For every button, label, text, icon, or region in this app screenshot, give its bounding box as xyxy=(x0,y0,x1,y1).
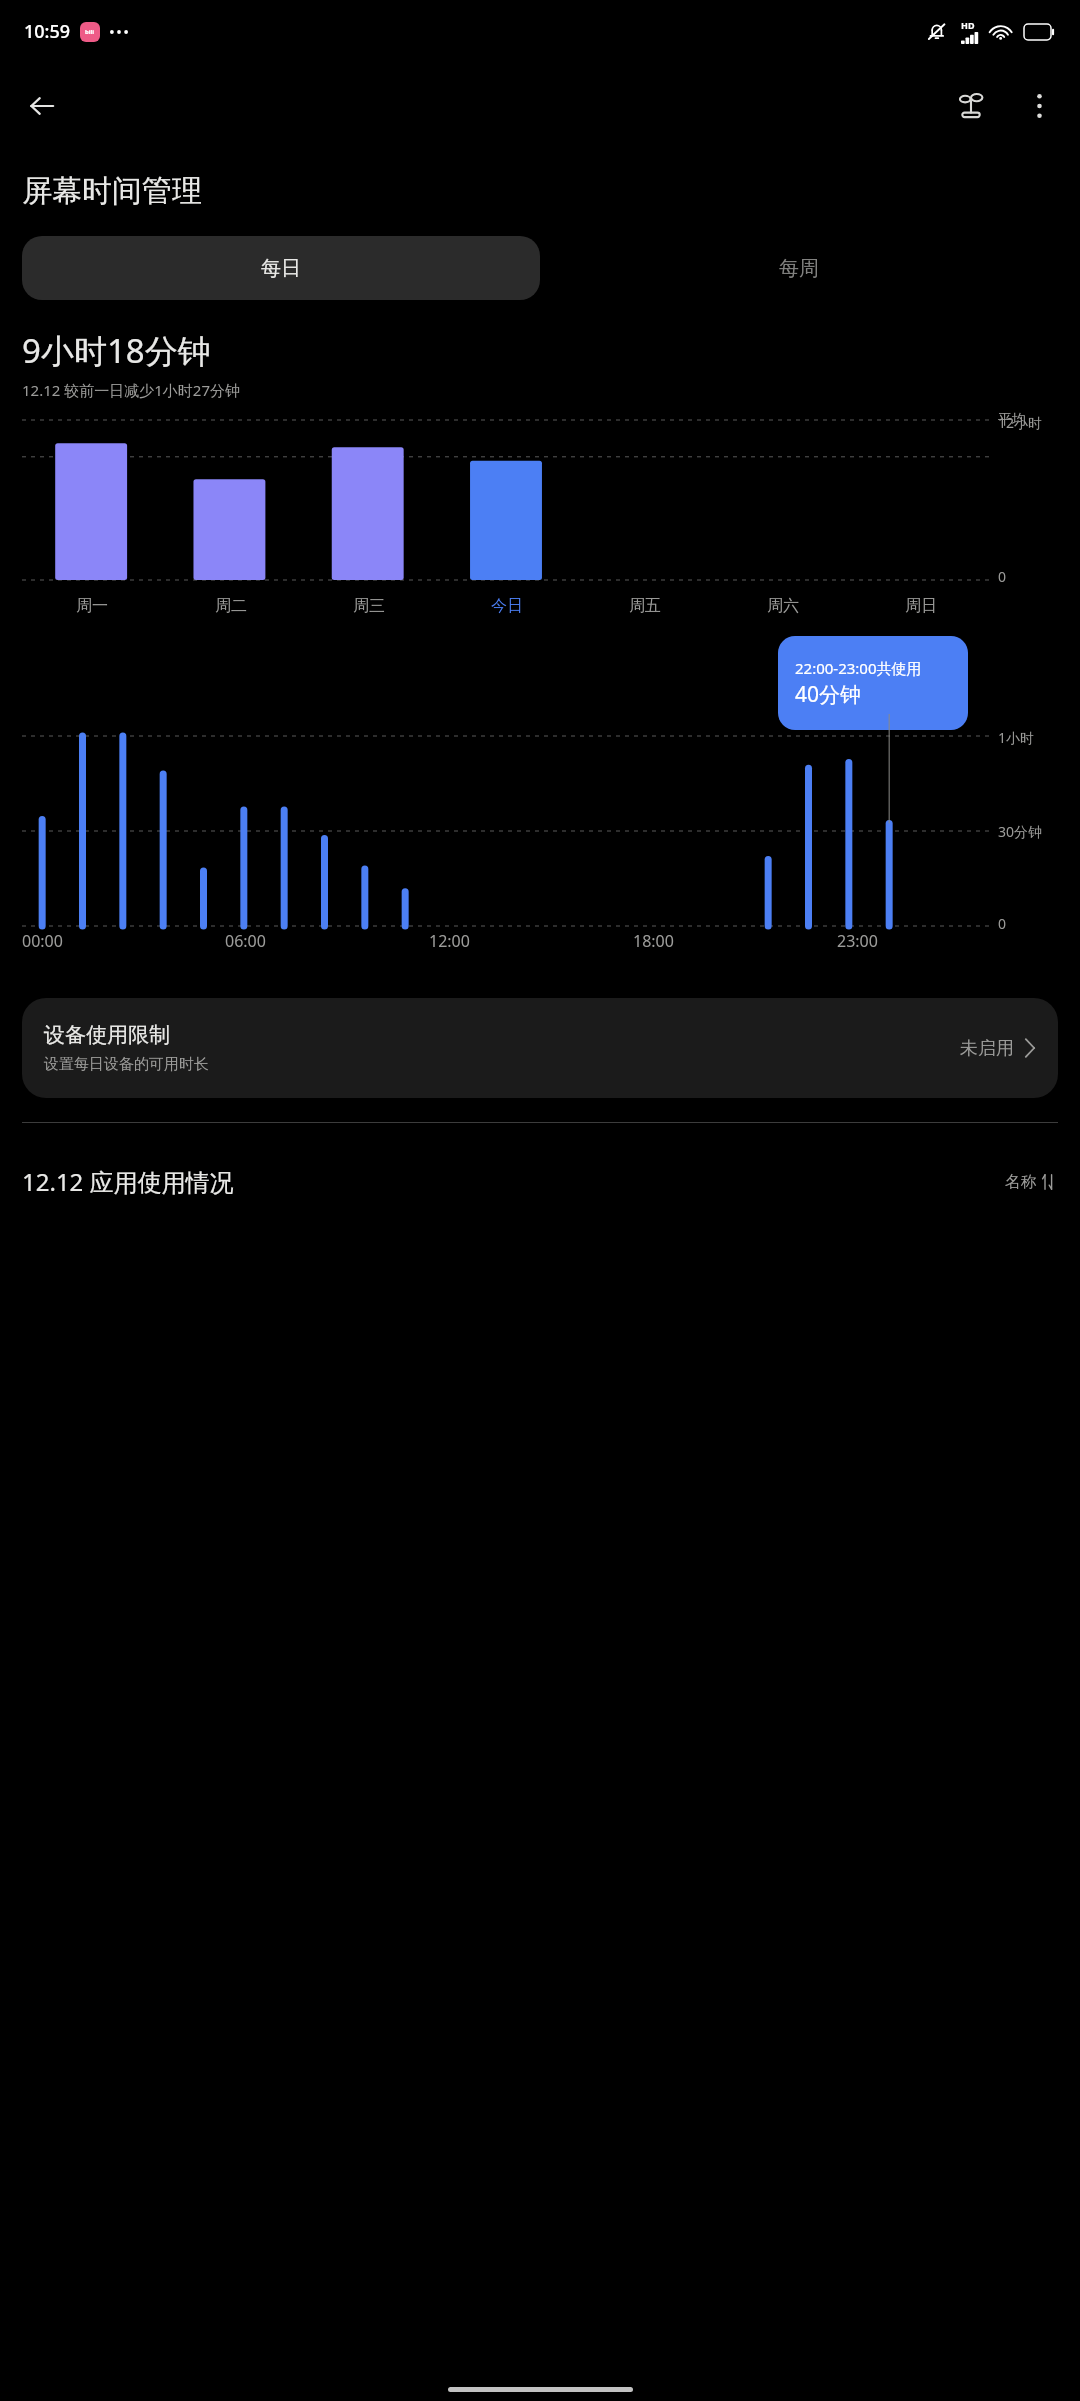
button[interactable]: 周五 xyxy=(576,584,714,628)
staticText: 0 xyxy=(998,567,1007,586)
button[interactable]: Back xyxy=(14,78,70,134)
staticText: 12.12 较前一日减少1小时27分钟 xyxy=(22,380,240,400)
staticText: 名称 xyxy=(1005,1172,1037,1192)
staticText: bili xyxy=(85,28,95,36)
staticText: 12:00 xyxy=(429,930,470,952)
staticText: 未启用 xyxy=(960,1037,1014,1060)
staticText: 22:00-23:00共使用 xyxy=(795,658,922,678)
button[interactable]: Focus mode xyxy=(944,79,998,133)
staticText: 30分钟 xyxy=(998,822,1043,841)
button[interactable]: 周一 xyxy=(22,584,161,628)
staticText: 周三 xyxy=(353,596,385,616)
staticText: 06:00 xyxy=(225,930,266,952)
staticText: 屏幕时间管理 xyxy=(22,172,202,210)
staticText: 周二 xyxy=(215,596,247,616)
staticText: 平均 xyxy=(998,411,1026,429)
staticText: 周六 xyxy=(767,596,799,616)
staticText: 今日 xyxy=(491,596,523,616)
button[interactable]: 名称 xyxy=(1001,1166,1058,1198)
button[interactable]: 每日 xyxy=(22,236,540,300)
staticText: 40分钟 xyxy=(795,680,862,709)
staticText: 18:00 xyxy=(633,930,674,952)
button[interactable]: 22:00-23:00共使用 xyxy=(778,636,968,730)
staticText: 1小时 xyxy=(998,728,1035,747)
staticText: HD xyxy=(961,19,975,31)
staticText: 每日 xyxy=(261,256,301,281)
staticText: 周五 xyxy=(629,596,661,616)
staticText: 周一 xyxy=(76,596,108,616)
staticText: 周日 xyxy=(905,596,937,616)
staticText: 每周 xyxy=(779,256,819,281)
button[interactable]: 周日 xyxy=(852,584,990,628)
button[interactable]: 周二 xyxy=(161,584,300,628)
button[interactable]: 周六 xyxy=(714,584,852,628)
staticText: 9小时18分钟 xyxy=(22,328,211,373)
staticText: 设备使用限制 xyxy=(44,1022,170,1048)
staticText: 12.12 应用使用情况 xyxy=(22,1165,234,1198)
button[interactable]: 周三 xyxy=(300,584,438,628)
button[interactable]: More options xyxy=(1012,79,1066,133)
staticText: 设置每日设备的可用时长 xyxy=(44,1055,209,1074)
staticText: 12小时 xyxy=(998,413,1043,432)
staticText: 23:00 xyxy=(837,930,878,952)
staticText: 10:59 xyxy=(24,19,71,44)
button[interactable]: 今日 xyxy=(438,584,576,628)
staticText: 0 xyxy=(998,914,1007,933)
staticText: 00:00 xyxy=(22,930,63,952)
button[interactable]: 每周 xyxy=(540,236,1058,300)
button[interactable]: 设备使用限制 xyxy=(22,998,1058,1098)
